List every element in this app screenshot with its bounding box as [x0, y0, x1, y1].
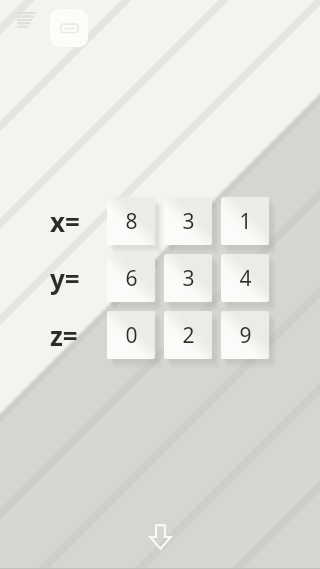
button[interactable]: 1 — [221, 197, 269, 245]
staticText: 9 — [239, 321, 252, 350]
button[interactable]: 3 — [164, 197, 212, 245]
button[interactable]: App icon — [50, 9, 88, 47]
staticText: 0 — [125, 321, 138, 350]
staticText: 3 — [182, 207, 195, 236]
staticText: y= — [50, 261, 80, 296]
staticText: 4 — [239, 264, 252, 293]
button[interactable]: 6 — [107, 254, 155, 302]
button[interactable]: 2 — [164, 311, 212, 359]
staticText: 1 — [239, 207, 252, 236]
button[interactable]: Scroll down — [140, 517, 180, 557]
staticText: x= — [50, 204, 80, 239]
button[interactable]: 8 — [107, 197, 155, 245]
button[interactable]: 3 — [164, 254, 212, 302]
button[interactable]: Menu — [13, 7, 39, 33]
staticText: 2 — [182, 321, 195, 350]
staticText: 6 — [125, 264, 138, 293]
staticText: 3 — [182, 264, 195, 293]
button[interactable]: 0 — [107, 311, 155, 359]
button[interactable]: 4 — [221, 254, 269, 302]
button[interactable]: 9 — [221, 311, 269, 359]
staticText: z= — [50, 318, 78, 353]
staticText: 8 — [125, 207, 138, 236]
